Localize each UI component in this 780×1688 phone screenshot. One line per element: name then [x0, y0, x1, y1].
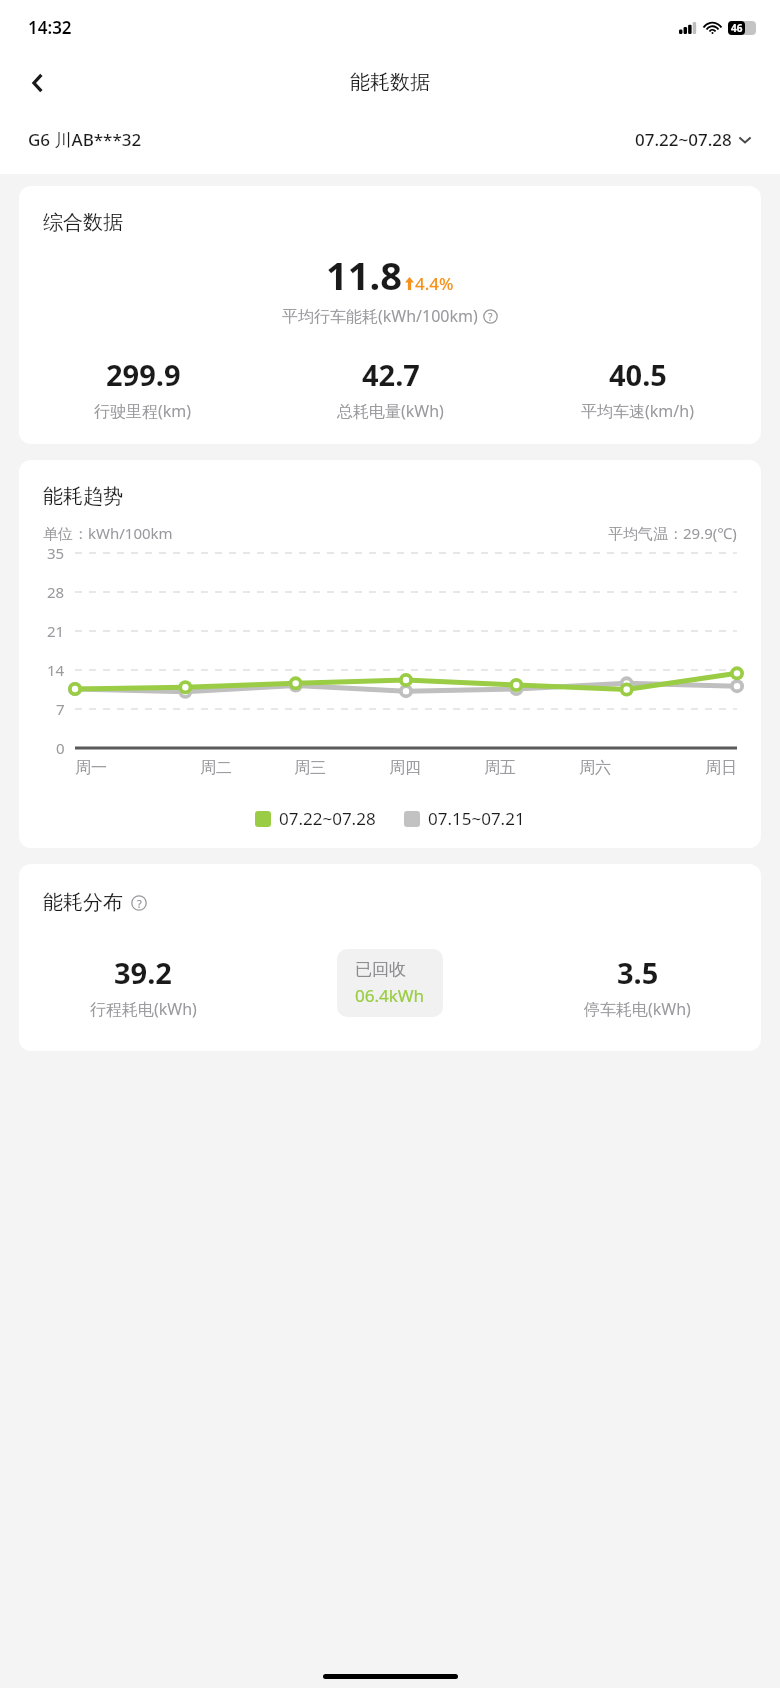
- staticText: 4.4%: [415, 272, 454, 295]
- staticText: 14:32: [28, 16, 72, 39]
- staticText: 已回收: [355, 959, 406, 980]
- staticText: 7: [56, 699, 65, 719]
- button[interactable]: 能耗分布: [19, 864, 761, 1051]
- staticText: 11.8: [326, 249, 402, 301]
- staticText: 周一: [75, 758, 107, 778]
- staticText: 能耗数据: [350, 70, 430, 95]
- staticText: 07.15~07.21: [428, 807, 525, 830]
- staticText: 平均气温：29.9(℃): [608, 523, 737, 543]
- staticText: 能耗趋势: [43, 484, 123, 509]
- staticText: 46: [731, 21, 743, 35]
- staticText: 0: [56, 738, 65, 758]
- staticText: 平均行车能耗(kWh/100km): [282, 305, 478, 327]
- staticText: 周四: [389, 758, 421, 778]
- staticText: ?: [488, 310, 493, 324]
- staticText: 周六: [579, 758, 611, 778]
- staticText: 行驶里程(km): [94, 400, 192, 422]
- staticText: 39.2: [114, 953, 172, 992]
- button[interactable]: 能耗趋势: [19, 460, 761, 848]
- staticText: G6 川AB***32: [28, 128, 142, 151]
- staticText: 35: [47, 543, 65, 563]
- staticText: 综合数据: [43, 210, 123, 235]
- staticText: 周三: [294, 758, 326, 778]
- staticText: 06.4kWh: [355, 984, 425, 1007]
- staticText: 停车耗电(kWh): [584, 998, 691, 1020]
- staticText: 07.22~07.28: [279, 807, 376, 830]
- button[interactable]: 综合数据: [19, 186, 761, 444]
- staticText: 能耗分布: [43, 890, 123, 915]
- staticText: 14: [47, 660, 65, 680]
- staticText: 299.9: [106, 355, 181, 394]
- staticText: 21: [47, 621, 65, 641]
- staticText: 平均车速(km/h): [581, 400, 694, 422]
- button[interactable]: Back: [14, 59, 62, 107]
- staticText: 周二: [200, 758, 232, 778]
- staticText: 28: [47, 582, 65, 602]
- staticText: ?: [137, 896, 142, 911]
- staticText: 总耗电量(kWh): [337, 400, 444, 422]
- staticText: 3.5: [617, 953, 659, 992]
- staticText: 42.7: [362, 355, 420, 394]
- staticText: 40.5: [609, 355, 667, 394]
- staticText: 07.22~07.28: [635, 128, 732, 151]
- staticText: 周五: [484, 758, 516, 778]
- staticText: 周日: [705, 758, 737, 778]
- button[interactable]: 07.22~07.28: [635, 128, 752, 151]
- staticText: 行程耗电(kWh): [90, 998, 197, 1020]
- staticText: 单位：kWh/100km: [43, 523, 173, 543]
